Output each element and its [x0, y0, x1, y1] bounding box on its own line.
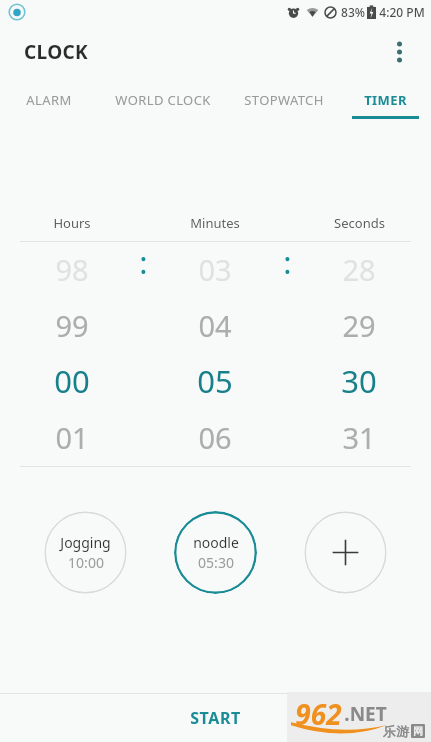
staticText: 06 — [198, 418, 232, 457]
staticText: 07 — [198, 465, 232, 467]
staticText: Minutes — [190, 214, 240, 232]
staticText: 32 — [342, 465, 376, 467]
staticText: WORLD CLOCK — [115, 91, 211, 109]
staticText: 乐游 — [383, 723, 409, 739]
staticText: 98 — [55, 250, 89, 289]
staticText: 网 — [413, 725, 423, 738]
staticText: 83% — [341, 4, 365, 20]
button[interactable]: TIMER — [339, 80, 431, 119]
staticText: 00 — [54, 360, 90, 402]
button[interactable]: More options — [377, 30, 421, 74]
staticText: ALARM — [26, 91, 72, 109]
button[interactable]: START — [0, 694, 431, 742]
button[interactable]: ALARM — [0, 80, 97, 119]
button[interactable]: 28 — [287, 241, 431, 467]
staticText: .NET — [344, 701, 387, 727]
staticText: Jogging — [60, 533, 111, 552]
staticText: : — [139, 241, 148, 283]
staticText: 01 — [55, 418, 89, 457]
staticText: 99 — [55, 306, 89, 345]
staticText: 03 — [198, 250, 232, 289]
staticText: Seconds — [334, 214, 385, 232]
button[interactable]: Jogging — [44, 511, 127, 594]
button[interactable]: Add preset timer — [304, 511, 387, 594]
staticText: 02 — [55, 465, 89, 467]
staticText: 10:00 — [68, 553, 104, 572]
staticText: 31 — [342, 418, 376, 457]
staticText: 05 — [197, 360, 233, 402]
button[interactable]: 98 — [0, 241, 143, 467]
staticText: 28 — [342, 250, 376, 289]
button[interactable]: noodle — [174, 511, 257, 594]
button[interactable]: STOPWATCH — [228, 80, 339, 119]
staticText: CLOCK — [24, 39, 88, 65]
staticText: : — [283, 241, 292, 283]
button[interactable]: WORLD CLOCK — [97, 80, 228, 119]
staticText: 04 — [198, 306, 232, 345]
staticText: 05:30 — [198, 553, 234, 572]
staticText: noodle — [193, 533, 239, 552]
button[interactable]: 03 — [143, 241, 287, 467]
staticText: 30 — [341, 360, 377, 402]
staticText: 29 — [342, 306, 376, 345]
staticText: 962 — [295, 695, 342, 733]
staticText: START — [190, 707, 241, 729]
staticText: STOPWATCH — [244, 91, 324, 109]
staticText: Hours — [53, 214, 91, 232]
staticText: TIMER — [364, 91, 407, 109]
staticText: 4:20 PM — [379, 4, 425, 20]
